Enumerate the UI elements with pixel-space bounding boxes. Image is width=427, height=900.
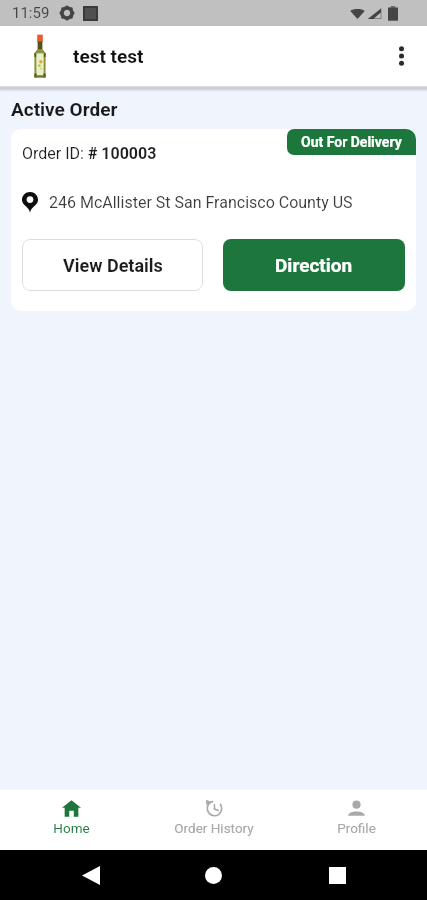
button[interactable]: Home (0, 790, 143, 850)
staticText: Home (53, 820, 90, 836)
button[interactable]: Home (180, 850, 247, 900)
staticText: Order ID: # 100003 (22, 144, 157, 163)
staticText: Out For Delivery (301, 134, 402, 150)
button[interactable]: Profile (285, 790, 427, 850)
staticText: 246 McAllister St San Francisco County U… (49, 193, 353, 212)
button[interactable]: Recent apps (304, 850, 371, 900)
button[interactable]: More options (381, 36, 421, 76)
button[interactable]: View Details (22, 239, 203, 291)
staticText: Order History (174, 820, 254, 836)
staticText: test test (73, 45, 144, 67)
staticText: Direction (275, 254, 353, 276)
staticText: Active Order (11, 98, 118, 120)
staticText: View Details (63, 255, 163, 276)
button[interactable]: Order History (143, 790, 285, 850)
staticText: Profile (337, 820, 376, 836)
staticText: 11:59 (12, 4, 50, 22)
button[interactable]: Direction (223, 239, 405, 291)
button[interactable]: Back (57, 850, 124, 900)
